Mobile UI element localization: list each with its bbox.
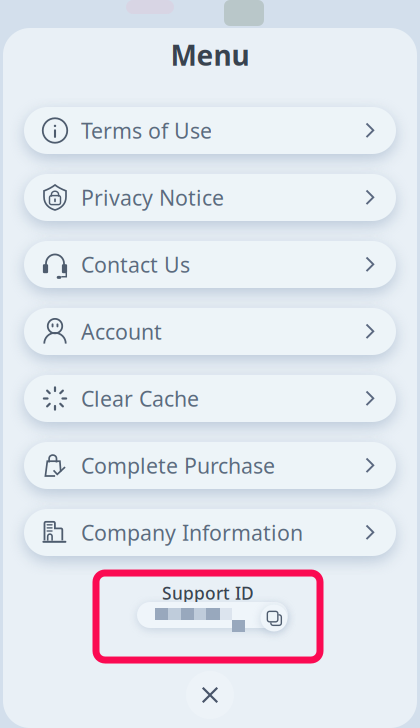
button[interactable]: Copy Support ID: [257, 601, 291, 635]
button[interactable]: Privacy Notice: [24, 174, 396, 221]
button[interactable]: Close: [186, 671, 234, 719]
staticText: Contact Us: [81, 250, 190, 279]
button[interactable]: Account: [24, 308, 396, 355]
button[interactable]: Complete Purchase: [24, 442, 396, 489]
staticText: Support ID: [162, 581, 254, 604]
button[interactable]: Clear Cache: [24, 375, 396, 422]
staticText: Privacy Notice: [81, 183, 224, 212]
button[interactable]: Company Information: [24, 509, 396, 556]
staticText: Account: [81, 317, 162, 346]
staticText: Terms of Use: [81, 116, 212, 145]
staticText: Menu: [170, 36, 249, 74]
button[interactable]: Terms of Use: [24, 107, 396, 154]
staticText: Clear Cache: [81, 384, 199, 413]
staticText: Company Information: [81, 518, 303, 547]
button[interactable]: Contact Us: [24, 241, 396, 288]
staticText: Complete Purchase: [81, 451, 275, 480]
